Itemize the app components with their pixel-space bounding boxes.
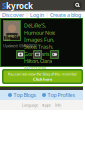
staticText: Log in [30, 11, 44, 19]
staticText: Click here [33, 76, 52, 82]
staticText: Apps [42, 102, 51, 108]
staticText: Create a blog [50, 11, 81, 19]
staticText: djsamageddon [4, 34, 19, 42]
button[interactable]: S [0, 0, 33, 11]
button[interactable]: Log in [30, 11, 44, 19]
staticText: Top Blogs [13, 91, 36, 99]
button[interactable]: Apps [42, 102, 51, 108]
staticText: Language [22, 102, 38, 108]
staticText: Updated: 03/04/2010 [3, 43, 37, 48]
staticText: You can not view the blog of this member [7, 71, 77, 76]
staticText: Top Profiles [47, 91, 75, 99]
button[interactable]: Top Profiles [41, 91, 75, 99]
staticText: | [45, 11, 48, 19]
button[interactable]: Search [72, 0, 83, 11]
staticText: DéLiRe'S, Humour Noir, Images Fun, Sexe,… [24, 22, 55, 72]
staticText: Info [55, 102, 61, 108]
button[interactable]: Language [22, 102, 38, 108]
button[interactable]: Info [55, 102, 61, 108]
button[interactable]: Create a blog [50, 11, 81, 19]
button[interactable]: You can not view the blog of this member [2, 69, 83, 84]
staticText: | [25, 11, 28, 19]
button[interactable]: Discover [2, 11, 24, 19]
staticText: S [2, 1, 6, 11]
staticText: Discover [2, 11, 24, 19]
button[interactable]: Photos [16, 50, 25, 59]
button[interactable]: Top Blogs [7, 91, 36, 99]
button[interactable]: Music [50, 50, 59, 59]
button[interactable]: Videos [33, 50, 42, 59]
staticText: kyrock [6, 1, 33, 11]
